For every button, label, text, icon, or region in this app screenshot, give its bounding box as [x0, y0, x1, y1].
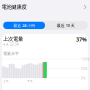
staticText: 最近 24 小時	[13, 23, 35, 28]
button[interactable]: Battery Health	[81, 2, 89, 12]
staticText: 下午	[27, 79, 33, 83]
staticText: 最近 10 天	[57, 23, 75, 28]
staticText: 電池健康度	[1, 4, 26, 10]
staticText: 上次電量	[3, 36, 23, 42]
staticText: 上午	[3, 79, 9, 83]
staticText: 100%	[81, 58, 89, 61]
staticText: 37%	[76, 36, 87, 43]
button[interactable]: 最近 24 小時	[3, 22, 45, 29]
staticText: 電量水平	[3, 51, 19, 56]
staticText: 今天 22:34	[3, 43, 19, 46]
button[interactable]: 最近 10 天	[45, 22, 87, 29]
staticText: 50%	[81, 67, 87, 71]
staticText: 0%	[81, 77, 85, 80]
